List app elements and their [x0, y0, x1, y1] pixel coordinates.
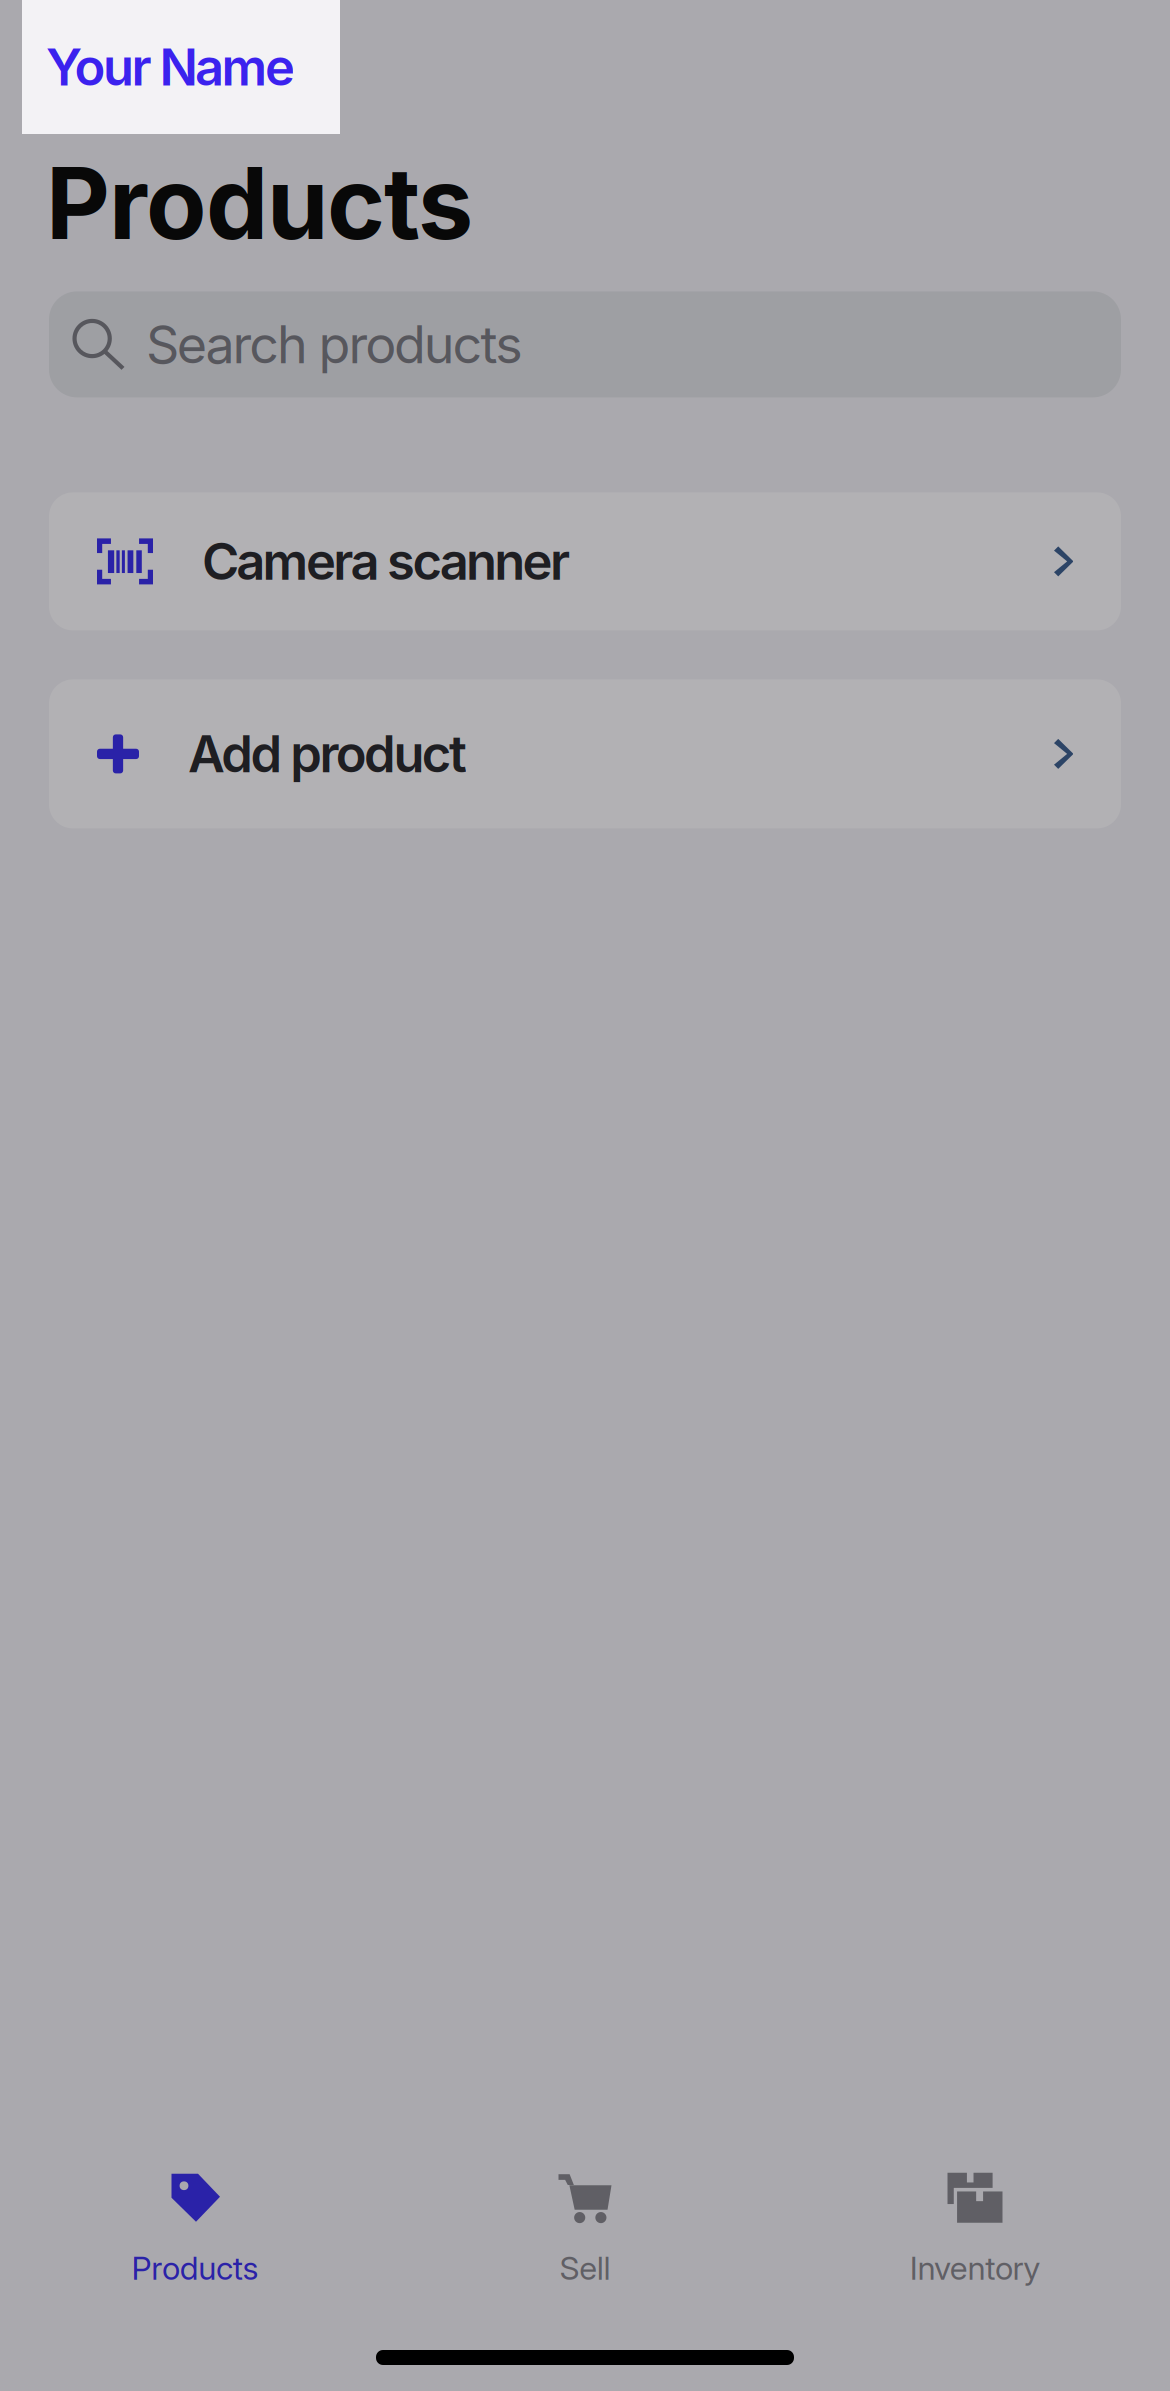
button[interactable]: Add product — [49, 679, 1121, 828]
button[interactable]: Camera scanner — [49, 492, 1121, 630]
button[interactable]: Search products — [49, 291, 1121, 397]
staticText: Add product — [188, 724, 467, 784]
staticText: Inventory — [910, 2249, 1040, 2287]
staticText: Your Name — [46, 37, 295, 97]
button[interactable]: Your Name — [22, 0, 340, 134]
staticText: Sell — [559, 2249, 610, 2287]
button[interactable]: Inventory — [780, 2172, 1170, 2287]
staticText: Camera scanner — [202, 531, 570, 591]
staticText: Products — [131, 2249, 258, 2287]
staticText: Search products — [146, 314, 522, 375]
button[interactable]: Products — [0, 2172, 390, 2287]
staticText: Products — [46, 145, 473, 261]
button[interactable]: Sell — [390, 2172, 780, 2287]
